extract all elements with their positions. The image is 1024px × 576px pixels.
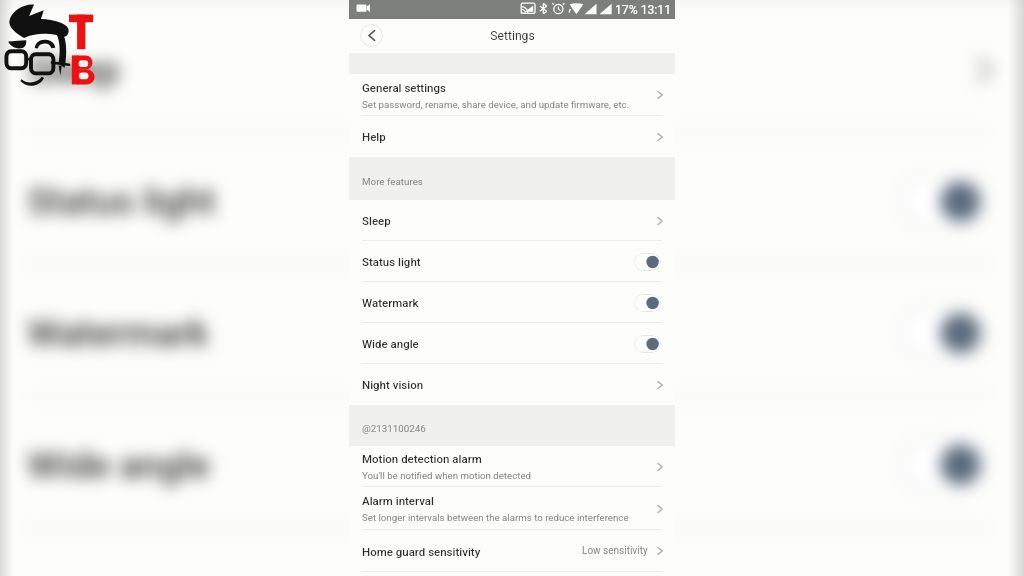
button[interactable]: Motion detection alarm bbox=[349, 446, 675, 487]
button[interactable]: Home guard sensitivity bbox=[349, 530, 675, 572]
staticText: Home guard sensitivity bbox=[362, 545, 481, 558]
staticText: Wide angle bbox=[362, 337, 419, 350]
staticText: Watermark bbox=[362, 296, 419, 309]
staticText: Status light bbox=[27, 179, 217, 221]
staticText: Help bbox=[362, 130, 386, 143]
staticText: Motion detection alarm bbox=[362, 452, 482, 465]
button[interactable]: Watermark bbox=[0, 266, 1024, 397]
staticText: Wide angle bbox=[27, 442, 210, 484]
button[interactable]: Status light switch, on bbox=[634, 253, 661, 271]
staticText: Sleep bbox=[27, 47, 121, 89]
button[interactable]: Wide angle switch, on bbox=[634, 335, 661, 353]
button[interactable]: Status light switch, on bbox=[901, 173, 987, 230]
staticText: You'll be notified when motion detected bbox=[362, 470, 532, 481]
button[interactable]: Wide angle bbox=[349, 323, 675, 364]
staticText: Settings bbox=[490, 29, 535, 43]
staticText: Alarm interval bbox=[362, 494, 434, 507]
staticText: Night vision bbox=[362, 378, 424, 391]
staticText: Set longer intervals between the alarms … bbox=[362, 512, 629, 523]
button[interactable]: Watermark bbox=[349, 282, 675, 323]
button[interactable]: Watermark switch, on bbox=[634, 294, 661, 312]
staticText: Status light bbox=[362, 255, 421, 268]
button[interactable]: Back bbox=[360, 24, 383, 47]
staticText: Low sensitivity bbox=[582, 545, 648, 557]
staticText: More features bbox=[362, 176, 423, 187]
button[interactable]: Night vision bbox=[349, 364, 675, 405]
button[interactable]: Status light bbox=[0, 134, 1024, 266]
staticText: @2131100246 bbox=[362, 423, 426, 434]
button[interactable]: Sleep bbox=[349, 200, 675, 241]
button[interactable]: Help bbox=[349, 116, 675, 157]
button[interactable]: Wide angle bbox=[0, 397, 1024, 529]
staticText: Watermark bbox=[27, 311, 210, 352]
button[interactable]: General settings bbox=[349, 74, 675, 116]
staticText: General settings bbox=[362, 81, 446, 94]
staticText: Set password, rename, share device, and … bbox=[362, 99, 630, 110]
staticText: 17% 13:11 bbox=[615, 3, 671, 17]
button[interactable]: Wide angle switch, on bbox=[901, 436, 987, 494]
staticText: Sleep bbox=[362, 214, 391, 227]
button[interactable]: Alarm interval bbox=[349, 487, 675, 530]
button[interactable]: Watermark switch, on bbox=[901, 304, 987, 362]
button[interactable]: Night vision bbox=[0, 529, 1024, 576]
button[interactable]: Status light bbox=[349, 241, 675, 282]
button[interactable]: Sleep bbox=[0, 2, 1024, 134]
